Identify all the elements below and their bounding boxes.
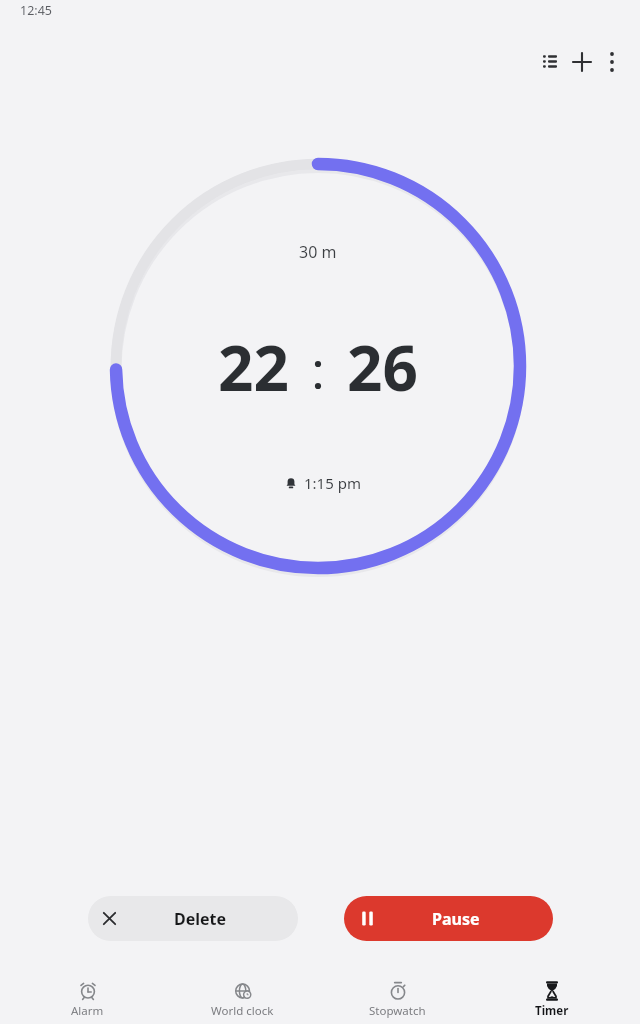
staticText: 1:15 pm [304, 473, 361, 493]
staticText: Delete [174, 908, 227, 930]
button[interactable]: Alarm [22, 980, 152, 1024]
button[interactable] [604, 50, 620, 74]
button[interactable] [538, 50, 562, 74]
staticText: Alarm [71, 1003, 104, 1019]
button[interactable]: Pause [344, 896, 553, 941]
button[interactable]: Stopwatch [332, 980, 462, 1024]
button[interactable]: Timer [487, 980, 617, 1024]
staticText: Stopwatch [369, 1003, 426, 1019]
button[interactable]: Delete [88, 896, 298, 941]
staticText: 22 [218, 325, 289, 409]
button[interactable] [571, 51, 593, 73]
staticText: 26 [347, 325, 418, 409]
staticText: 30 m [299, 241, 337, 263]
staticText: 12:45 [20, 2, 52, 19]
staticText: World clock [211, 1003, 274, 1019]
staticText: Pause [432, 908, 480, 930]
button[interactable]: World clock [177, 980, 307, 1024]
staticText: Timer [535, 1003, 569, 1019]
